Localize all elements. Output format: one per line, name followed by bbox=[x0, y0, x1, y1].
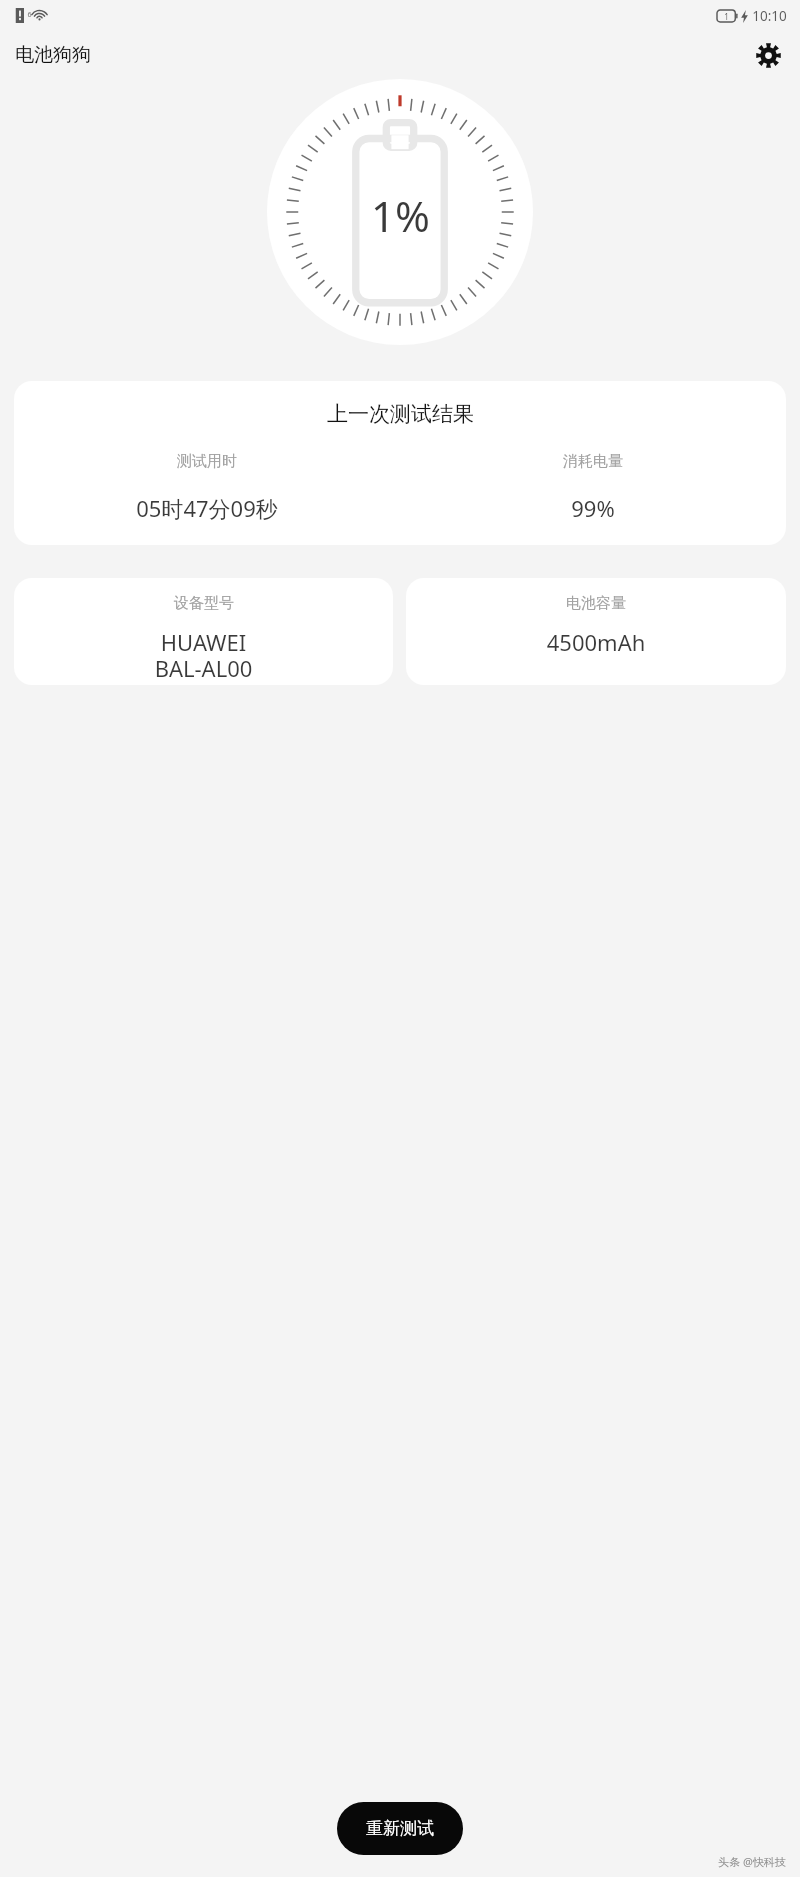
staticText: 消耗电量 bbox=[563, 452, 623, 471]
staticText: 电池狗狗 bbox=[15, 43, 91, 67]
staticText: 10:10 bbox=[752, 7, 787, 25]
staticText: 重新测试 bbox=[366, 1818, 434, 1839]
staticText: 4500mAh bbox=[406, 627, 786, 657]
staticText: 头条 @快科技 bbox=[718, 1854, 786, 1869]
staticText: 6 bbox=[27, 10, 32, 20]
staticText: 电池容量 bbox=[566, 594, 626, 613]
staticText: 05时47分09秒 bbox=[136, 493, 278, 523]
staticText: 99% bbox=[571, 493, 615, 523]
button[interactable]: 电池容量 bbox=[406, 578, 786, 685]
staticText: 设备型号 bbox=[174, 594, 234, 613]
staticText: 1 bbox=[724, 11, 729, 22]
staticText: 测试用时 bbox=[177, 452, 237, 471]
staticText: 1% bbox=[371, 187, 430, 244]
button[interactable]: 重新测试 bbox=[337, 1802, 463, 1855]
button[interactable]: 设备型号 bbox=[14, 578, 393, 685]
button[interactable]: 上一次测试结果 bbox=[14, 381, 786, 545]
button[interactable]: Settings bbox=[750, 37, 786, 73]
staticText: HUAWEI BAL-AL00 bbox=[14, 627, 393, 684]
staticText: 上一次测试结果 bbox=[327, 401, 474, 427]
